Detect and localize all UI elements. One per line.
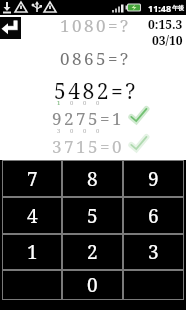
staticText: 3 [57,127,61,135]
staticText: 6 [148,203,159,229]
staticText: 午後 [172,4,184,12]
button[interactable] [123,270,184,300]
staticText: 0:15.3 [148,16,183,32]
staticText: 2 [87,239,98,265]
staticText: 0 [87,272,98,298]
staticText: 11:48 [148,2,172,14]
staticText: 0 [83,99,87,107]
button[interactable]: 7 [2,160,62,197]
button[interactable] [2,270,62,300]
staticText: 03/10 [152,32,183,48]
staticText: 0 [83,127,87,135]
button[interactable]: 9 [123,160,184,197]
staticText: 1 [57,99,61,107]
staticText: 4 [27,203,38,229]
button[interactable]: 8 [62,160,123,197]
staticText: 5482=? [54,77,138,106]
staticText: 0 [70,99,74,107]
staticText: 7 [27,166,38,192]
button[interactable]: 0 [62,270,123,300]
staticText: 0 [96,127,100,135]
staticText: 5 [87,203,98,229]
staticText: 3715=0 [52,135,125,158]
staticText: 0865=? [60,47,131,70]
button[interactable]: 4 [2,197,62,234]
staticText: 1080=? [60,14,131,37]
staticText: 0 [96,99,100,107]
staticText: 3 [148,239,159,265]
button[interactable] [0,17,21,39]
staticText: 9 [148,166,159,192]
button[interactable]: 3 [123,234,184,270]
staticText: 1 [27,239,38,265]
button[interactable]: 5 [62,197,123,234]
button[interactable]: 2 [62,234,123,270]
staticText: 8 [87,166,98,192]
button[interactable]: 6 [123,197,184,234]
staticText: 9275=1 [52,107,125,130]
button[interactable]: 1 [2,234,62,270]
staticText: 0 [70,127,74,135]
